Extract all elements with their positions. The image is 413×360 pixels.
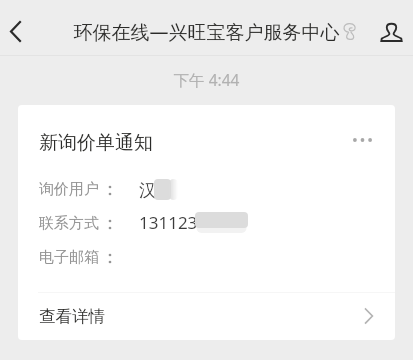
button[interactable]: More options bbox=[346, 128, 378, 152]
staticText: 查看详情 bbox=[39, 306, 105, 327]
staticText: 询价用户 bbox=[39, 180, 99, 199]
staticText: 汉 bbox=[139, 180, 156, 201]
staticText: 下午 4:44 bbox=[0, 69, 413, 90]
staticText: 联系方式 bbox=[39, 214, 99, 233]
staticText: 电子邮箱 bbox=[39, 248, 99, 267]
button[interactable]: Back bbox=[0, 10, 37, 53]
staticText: 新询价单通知 bbox=[39, 131, 153, 155]
staticText: 环保在线—兴旺宝客户服务中心 bbox=[0, 19, 413, 45]
button[interactable]: 新询价单通知 bbox=[18, 105, 395, 340]
staticText: 131123 bbox=[139, 211, 198, 234]
button[interactable]: 查看详情 bbox=[18, 293, 395, 339]
button[interactable]: Contact profile bbox=[369, 10, 413, 54]
